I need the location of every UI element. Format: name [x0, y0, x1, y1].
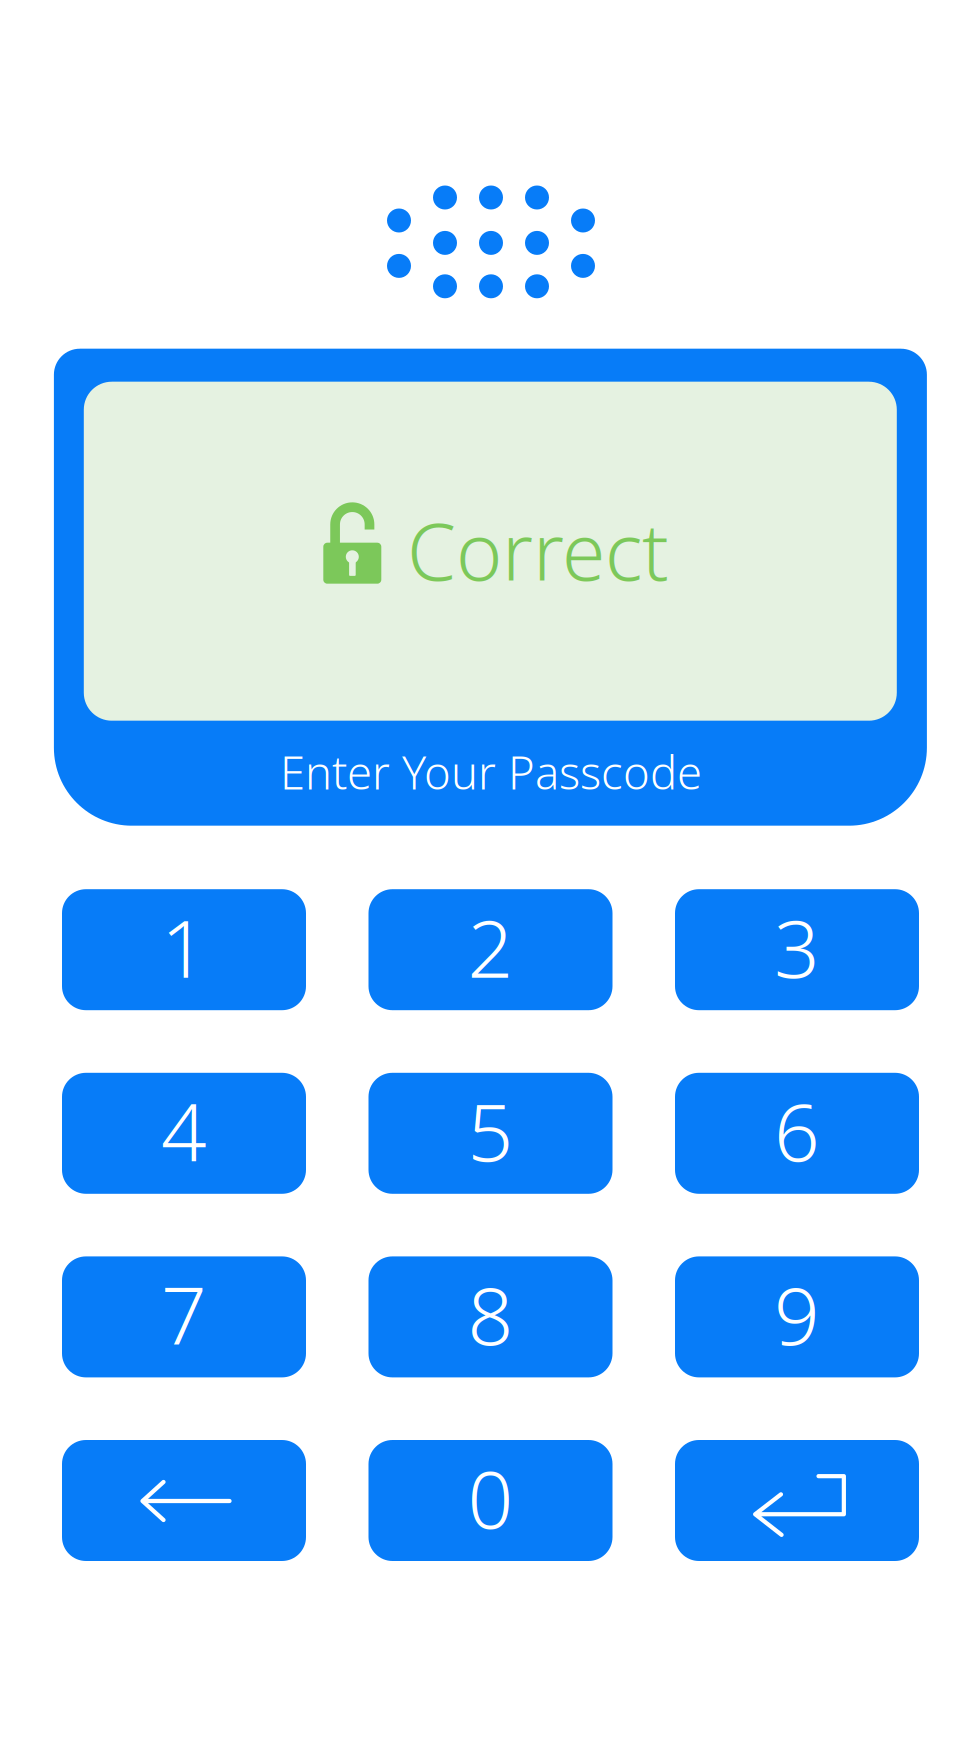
button[interactable]: 9 — [675, 1256, 919, 1377]
staticText: 7 — [161, 1261, 207, 1367]
staticText: Enter Your Passcode — [280, 742, 702, 802]
staticText: 0 — [467, 1444, 513, 1551]
button[interactable]: 3 — [675, 889, 919, 1010]
staticText: 1 — [161, 894, 207, 1000]
button[interactable]: 2 — [368, 889, 612, 1010]
button[interactable]: 7 — [62, 1256, 306, 1377]
button[interactable]: 6 — [675, 1073, 919, 1194]
button[interactable]: Delete — [62, 1440, 306, 1561]
staticText: 8 — [467, 1261, 513, 1367]
button[interactable]: 4 — [62, 1073, 306, 1194]
staticText: Correct — [407, 498, 669, 602]
button[interactable]: 8 — [368, 1256, 612, 1377]
staticText: 6 — [774, 1077, 820, 1183]
staticText: 4 — [161, 1077, 207, 1183]
staticText: 5 — [467, 1077, 513, 1183]
staticText: 9 — [774, 1261, 820, 1367]
staticText: 3 — [774, 894, 820, 1000]
button[interactable]: 1 — [62, 889, 306, 1010]
button[interactable]: Enter — [675, 1440, 919, 1561]
button[interactable]: 5 — [368, 1073, 612, 1194]
staticText: 2 — [467, 894, 513, 1000]
button[interactable]: 0 — [368, 1440, 612, 1561]
